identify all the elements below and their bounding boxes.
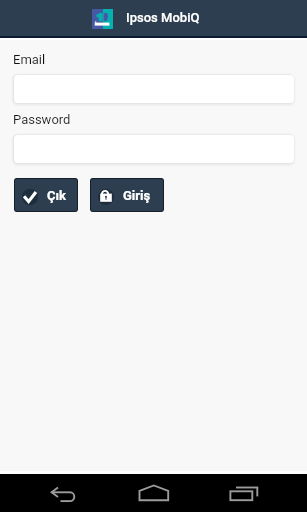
- staticText: Password: [13, 112, 71, 127]
- staticText: Ipsos MobiQ: [126, 10, 200, 25]
- button[interactable]: Recent apps: [216, 474, 272, 512]
- button[interactable]: Back: [37, 474, 93, 512]
- staticText: Çık: [47, 188, 67, 203]
- staticText: Giriş: [123, 188, 151, 203]
- button[interactable]: Home: [126, 474, 182, 512]
- button[interactable]: Çık: [14, 178, 78, 212]
- staticText: Email: [13, 52, 46, 67]
- button[interactable]: Giriş: [90, 178, 164, 212]
